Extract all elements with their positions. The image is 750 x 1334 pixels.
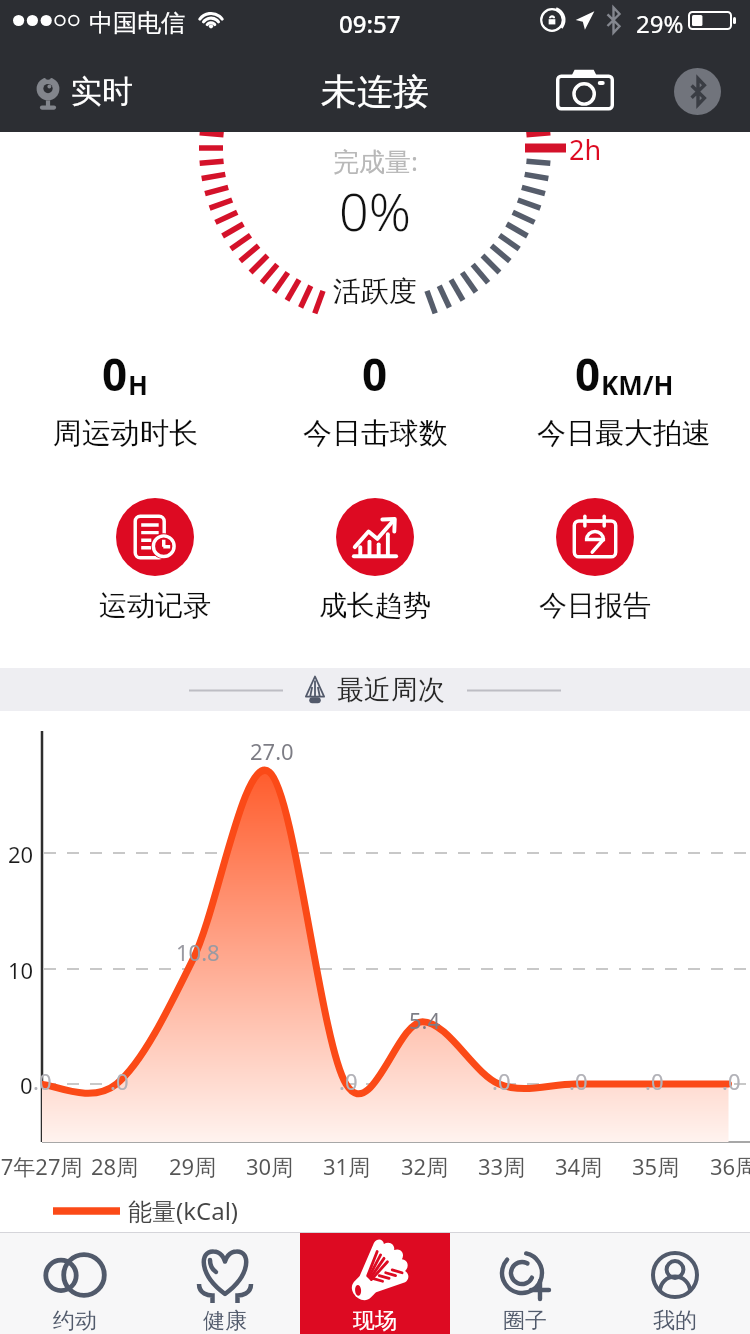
staticText: H — [128, 367, 148, 402]
staticText: 34周 — [555, 1151, 603, 1181]
staticText: 最近周次 — [337, 673, 445, 707]
button[interactable]: 成长趋势 — [300, 498, 450, 623]
staticText: 圈子 — [503, 1307, 547, 1334]
staticText: 未连接 — [321, 69, 429, 114]
staticText: .0 — [492, 1066, 511, 1096]
button[interactable]: 圈子 — [450, 1233, 600, 1334]
staticText: 0 — [575, 344, 601, 404]
button[interactable]: 约动 — [0, 1233, 150, 1334]
button[interactable]: 现场 — [300, 1233, 450, 1334]
staticText: .0 — [110, 1066, 129, 1096]
staticText: 5.4 — [409, 1005, 441, 1035]
staticText: 0 — [102, 344, 128, 404]
staticText: .0 — [645, 1066, 664, 1096]
staticText: 30周 — [246, 1151, 294, 1181]
staticText: 28周 — [91, 1151, 139, 1181]
staticText: .0 — [33, 1066, 52, 1096]
staticText: KM/H — [601, 367, 674, 402]
staticText: 32周 — [401, 1151, 449, 1181]
staticText: 2h — [569, 131, 602, 168]
button[interactable]: 0 — [504, 344, 744, 452]
staticText: 20 — [8, 839, 34, 869]
staticText: 36周 — [710, 1151, 750, 1181]
staticText: 2017年27周 — [0, 1151, 83, 1181]
staticText: 周运动时长 — [53, 415, 198, 452]
staticText: 能量(kCal) — [128, 1194, 239, 1227]
button[interactable]: 0 — [5, 344, 245, 452]
staticText: 中国电信 — [89, 8, 185, 38]
staticText: 10 — [8, 955, 34, 985]
staticText: 0% — [339, 175, 411, 246]
staticText: 27.0 — [250, 736, 294, 766]
staticText: 33周 — [478, 1151, 526, 1181]
staticText: .0 — [339, 1066, 358, 1096]
button[interactable]: 健康 — [150, 1233, 300, 1334]
staticText: 10.8 — [176, 937, 220, 967]
staticText: 成长趋势 — [319, 588, 431, 623]
staticText: 29周 — [169, 1151, 217, 1181]
staticText: 0 — [362, 344, 388, 404]
staticText: 完成量: — [333, 143, 418, 179]
staticText: 31周 — [323, 1151, 371, 1181]
staticText: 健康 — [203, 1307, 247, 1334]
staticText: 今日击球数 — [303, 415, 448, 452]
staticText: 0 — [20, 1070, 33, 1100]
staticText: 运动记录 — [99, 588, 211, 623]
staticText: 09:57 — [339, 7, 401, 40]
staticText: 我的 — [653, 1307, 697, 1334]
button[interactable]: Camera — [545, 51, 625, 131]
button[interactable]: 0 — [255, 344, 495, 452]
staticText: 29% — [636, 7, 684, 40]
staticText: 实时 — [71, 72, 133, 111]
button[interactable]: 实时 — [18, 62, 148, 121]
staticText: 35周 — [632, 1151, 680, 1181]
button[interactable]: 运动记录 — [80, 498, 230, 623]
staticText: .0 — [569, 1066, 588, 1096]
staticText: 今日报告 — [539, 588, 651, 623]
staticText: 活跃度 — [333, 274, 417, 309]
button[interactable]: Bluetooth — [674, 68, 721, 115]
button[interactable]: 我的 — [600, 1233, 750, 1334]
staticText: .0 — [722, 1066, 741, 1096]
staticText: 约动 — [53, 1307, 97, 1334]
staticText: 今日最大拍速 — [537, 415, 711, 452]
staticText: 现场 — [353, 1307, 397, 1334]
button[interactable]: 今日报告 — [520, 498, 670, 623]
